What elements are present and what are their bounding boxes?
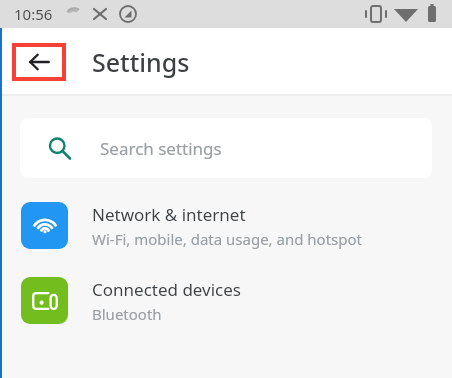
button[interactable]: Network & internet <box>0 202 452 249</box>
staticText: Network & internet <box>92 203 246 226</box>
staticText: Connected devices <box>92 278 242 301</box>
staticText: Search settings <box>100 137 222 160</box>
staticText: Wi-Fi, mobile, data usage, and hotspot <box>92 229 362 249</box>
button[interactable]: Search settings <box>20 118 432 178</box>
button[interactable]: Back <box>16 47 62 77</box>
button[interactable]: Connected devices <box>0 277 452 324</box>
staticText: Settings <box>92 45 190 79</box>
staticText: 10:56 <box>14 4 53 24</box>
staticText: Bluetooth <box>92 304 162 324</box>
